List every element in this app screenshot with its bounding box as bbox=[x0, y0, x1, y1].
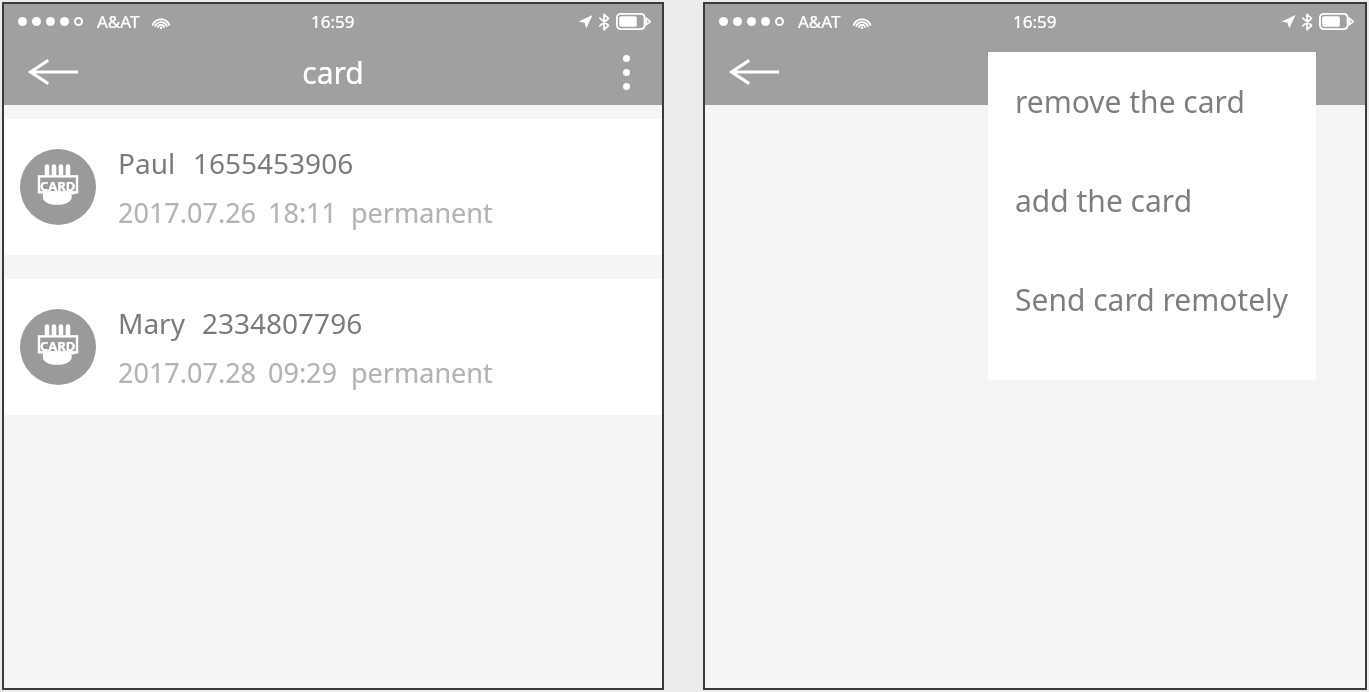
button[interactable]: Back bbox=[727, 52, 781, 92]
staticText: Paul bbox=[118, 144, 176, 182]
staticText: 2017.07.28 bbox=[118, 354, 257, 391]
button[interactable]: Back bbox=[26, 52, 80, 92]
staticText: 18:11 bbox=[268, 194, 338, 231]
staticText: 16:59 bbox=[1013, 10, 1057, 33]
button[interactable]: CARD bbox=[4, 279, 662, 415]
staticText: Send card remotely bbox=[1015, 279, 1289, 320]
staticText: remove the card bbox=[1015, 81, 1245, 122]
staticText: 2334807796 bbox=[202, 304, 363, 342]
button[interactable]: remove the card bbox=[988, 52, 1316, 151]
staticText: permanent bbox=[351, 354, 493, 391]
staticText: 2017.07.26 bbox=[118, 194, 257, 231]
button[interactable]: add the card bbox=[988, 151, 1316, 250]
staticText: CARD bbox=[40, 177, 76, 195]
staticText: Mary bbox=[118, 304, 185, 342]
staticText: permanent bbox=[351, 194, 493, 231]
staticText: 09:29 bbox=[268, 354, 338, 391]
staticText: A&AT bbox=[97, 10, 140, 33]
staticText: card bbox=[302, 52, 364, 93]
staticText: CARD bbox=[40, 337, 76, 355]
staticText: 16:59 bbox=[311, 10, 355, 33]
button[interactable]: Send card remotely bbox=[988, 250, 1316, 349]
staticText: add the card bbox=[1015, 180, 1193, 221]
staticText: A&AT bbox=[798, 10, 841, 33]
staticText: 1655453906 bbox=[193, 144, 354, 182]
button[interactable]: More options bbox=[604, 46, 648, 98]
button[interactable]: CARD bbox=[4, 119, 662, 255]
